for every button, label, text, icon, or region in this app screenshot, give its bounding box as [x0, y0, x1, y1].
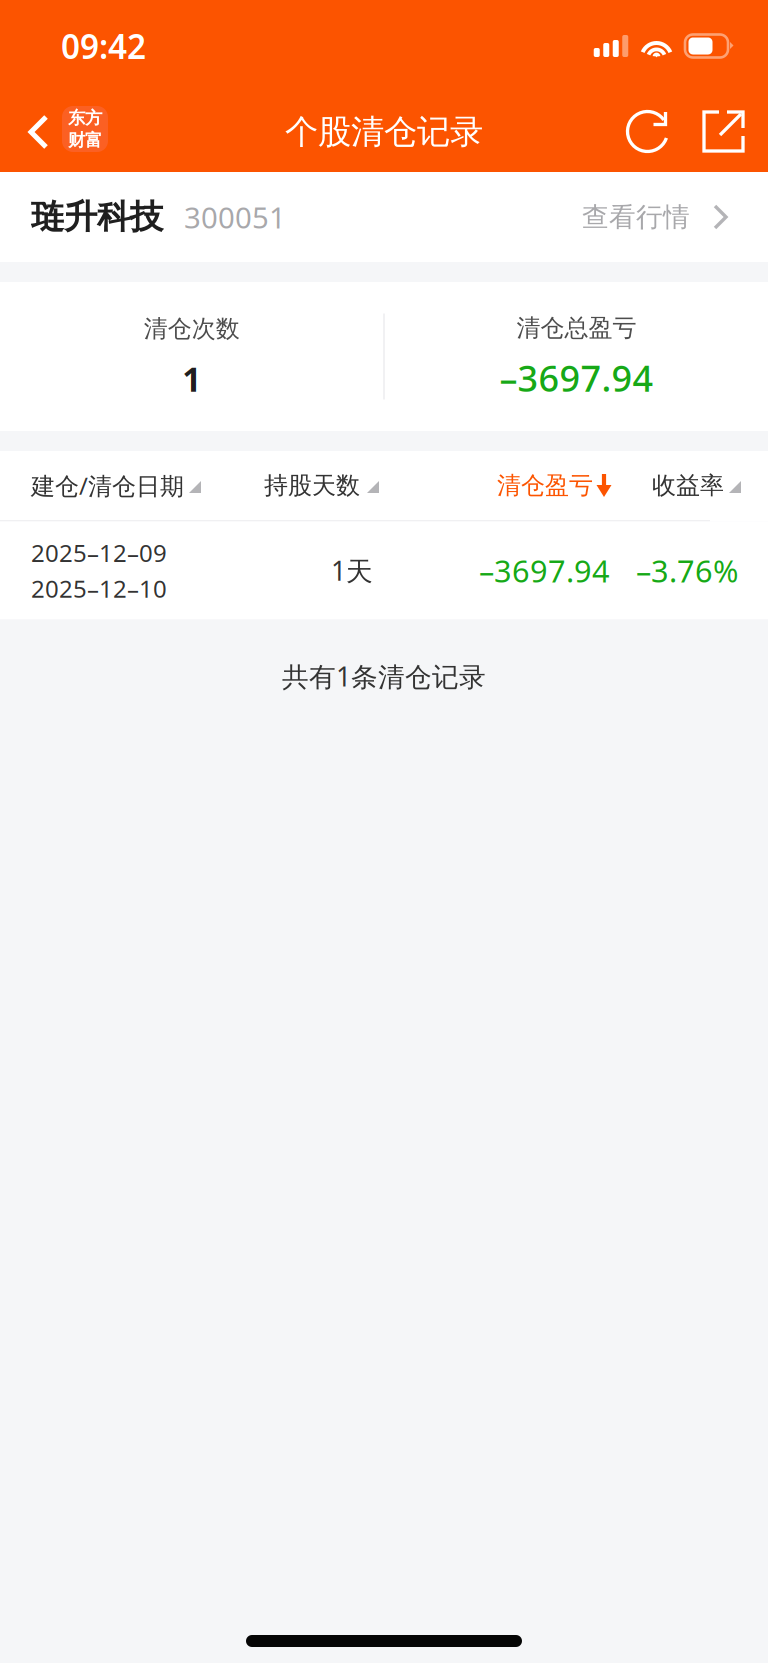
button[interactable]: 清仓盈亏 [497, 471, 652, 500]
button[interactable]: 返回 [0, 92, 122, 172]
staticText: –3.76% [636, 550, 738, 591]
staticText: –3697.94 [479, 550, 610, 591]
button[interactable]: 建仓/清仓日期 [31, 470, 264, 501]
staticText: 持股天数 [264, 471, 360, 500]
button[interactable]: 收益率 [652, 471, 738, 500]
staticText: 财富 [68, 129, 102, 151]
button[interactable]: 分享 [693, 99, 755, 165]
staticText: 东方 [68, 107, 102, 128]
staticText: 2025–12–09 [31, 537, 167, 568]
staticText: 清仓总盈亏 [516, 313, 636, 343]
staticText: 琏升科技 [31, 196, 163, 237]
staticText: 共有1条清仓记录 [282, 658, 486, 694]
staticText: 个股清仓记录 [285, 111, 483, 152]
button[interactable]: 持股天数 [264, 471, 497, 500]
staticText: 收益率 [652, 471, 724, 500]
staticText: 2025–12–10 [31, 572, 167, 604]
staticText: 建仓/清仓日期 [31, 470, 184, 501]
button[interactable]: 刷新 [617, 99, 679, 165]
staticText: 清仓盈亏 [497, 471, 593, 500]
staticText: –3697.94 [499, 354, 653, 402]
staticText: 查看行情 [582, 201, 690, 233]
staticText: 300051 [184, 197, 286, 236]
staticText: 1天 [331, 553, 373, 588]
staticText: 清仓次数 [144, 314, 240, 344]
button[interactable]: 查看行情 [582, 185, 729, 249]
staticText: 1 [182, 357, 201, 401]
staticText: 09:42 [61, 24, 146, 68]
